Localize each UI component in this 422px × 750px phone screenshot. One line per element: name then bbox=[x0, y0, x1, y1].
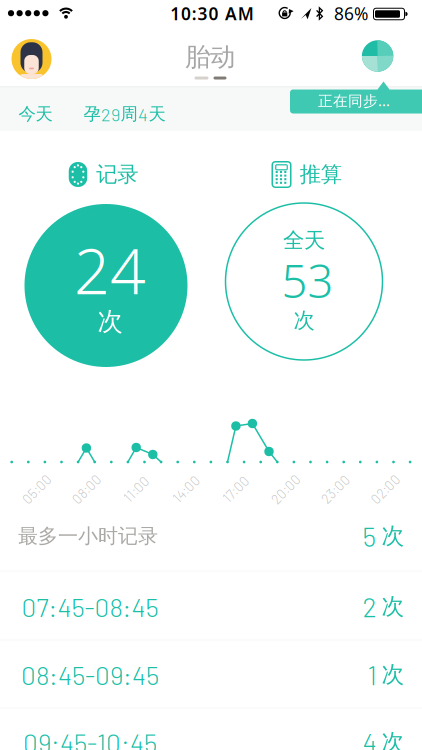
staticText: 次 bbox=[381, 728, 404, 750]
staticText: 周 bbox=[120, 103, 137, 125]
staticText: 次 bbox=[293, 307, 314, 334]
staticText: 4 bbox=[362, 726, 376, 750]
staticText: 最多一小时记录 bbox=[18, 524, 158, 548]
staticText: 5 bbox=[362, 520, 376, 552]
staticText: 孕 bbox=[83, 103, 100, 125]
staticText: 推算 bbox=[300, 161, 342, 188]
staticText: 17:00 bbox=[220, 481, 251, 497]
button[interactable]: 个人资料 bbox=[11, 39, 51, 79]
staticText: 23:00 bbox=[319, 481, 353, 497]
staticText: 14:00 bbox=[170, 481, 202, 497]
staticText: 20:00 bbox=[268, 481, 303, 497]
staticText: 次 bbox=[381, 661, 404, 688]
staticText: 次 bbox=[381, 593, 404, 620]
staticText: 86% bbox=[334, 2, 368, 25]
staticText: 天 bbox=[148, 103, 165, 125]
button[interactable]: 推算 bbox=[272, 161, 342, 188]
staticText: 05:00 bbox=[19, 481, 54, 497]
staticText: 24 bbox=[74, 228, 146, 312]
staticText: 4 bbox=[138, 103, 148, 125]
staticText: 11:00 bbox=[121, 481, 151, 497]
staticText: 10:30 AM bbox=[170, 2, 254, 25]
staticText: 07:45-08:45 bbox=[21, 591, 158, 622]
staticText: 2 bbox=[362, 590, 376, 622]
staticText: 08:00 bbox=[69, 481, 104, 497]
staticText: 全天 bbox=[283, 227, 325, 254]
staticText: 02:00 bbox=[368, 481, 403, 497]
staticText: 1 bbox=[367, 658, 376, 690]
staticText: 记录 bbox=[96, 161, 138, 188]
staticText: 正在同步... bbox=[318, 91, 390, 110]
button[interactable]: 同步 bbox=[362, 40, 394, 72]
button[interactable]: 全天 53次 bbox=[225, 203, 382, 360]
staticText: 次 bbox=[97, 306, 122, 337]
staticText: 今天 bbox=[18, 103, 52, 125]
staticText: 胎动 bbox=[185, 41, 235, 72]
staticText: 29 bbox=[101, 103, 120, 125]
staticText: 53 bbox=[281, 250, 333, 311]
button[interactable]: 记录 bbox=[69, 161, 138, 188]
staticText: 09:45-10:45 bbox=[23, 726, 157, 750]
staticText: 08:45-09:45 bbox=[21, 659, 159, 690]
button[interactable]: 记录胎动 24次 bbox=[24, 204, 187, 367]
staticText: 次 bbox=[381, 522, 404, 550]
